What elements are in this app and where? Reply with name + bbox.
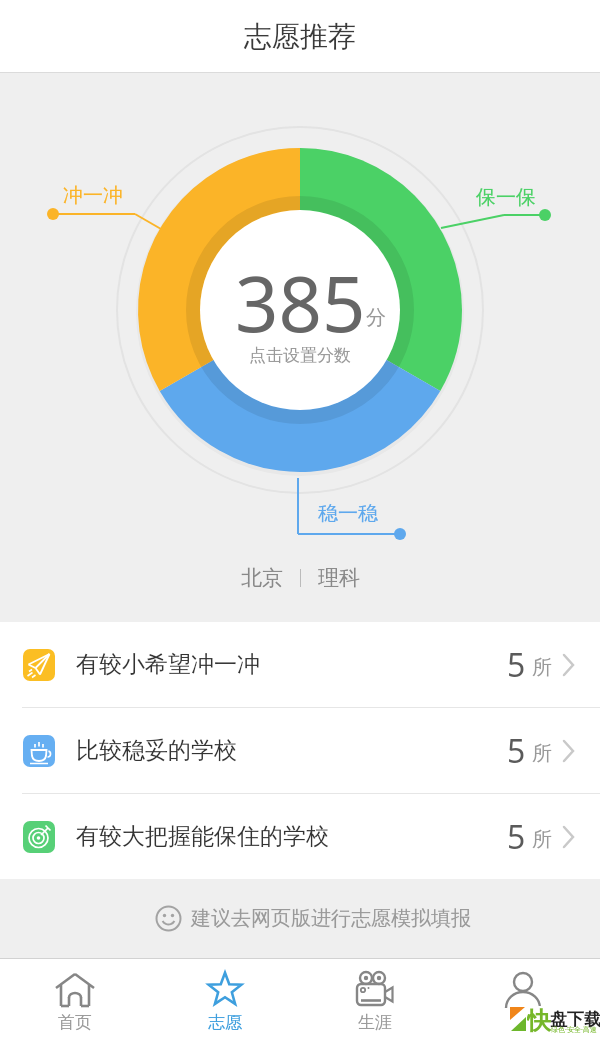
staticText: 稳一稳 <box>318 501 378 526</box>
staticText: 盘下载 <box>550 1009 600 1030</box>
staticText: 绿色·安全·高速 <box>551 1025 597 1035</box>
staticText: 志愿 <box>208 1012 242 1033</box>
staticText: 5 <box>507 729 526 773</box>
staticText: 5 <box>507 815 526 859</box>
staticText: 生涯 <box>358 1012 392 1033</box>
staticText: 理科 <box>318 565 360 591</box>
staticText: 点击设置分数 <box>249 345 351 366</box>
staticText: 比较稳妥的学校 <box>76 736 237 765</box>
staticText: 北京 <box>241 565 283 591</box>
staticText: 385 <box>235 251 366 355</box>
staticText: 所 <box>532 741 552 766</box>
staticText: 分 <box>366 305 386 330</box>
staticText: 冲一冲 <box>63 183 123 208</box>
button[interactable]: 有较大把握能保住的学校 <box>0 794 600 879</box>
button[interactable]: 比较稳妥的学校 <box>0 708 600 793</box>
staticText: 5 <box>507 643 526 687</box>
staticText: 首页 <box>58 1012 92 1033</box>
staticText: 志愿推荐 <box>244 19 356 54</box>
button[interactable]: 有较小希望冲一冲 <box>0 622 600 707</box>
button[interactable]: 北京 <box>241 565 360 591</box>
button[interactable]: 首页 <box>0 959 150 1039</box>
staticText: 建议去网页版进行志愿模拟填报 <box>191 906 471 931</box>
button[interactable]: 385 <box>235 251 366 355</box>
button[interactable] <box>450 959 600 1039</box>
button[interactable]: 志愿 <box>150 959 300 1039</box>
staticText: 所 <box>532 655 552 680</box>
button[interactable]: 生涯 <box>300 959 450 1039</box>
staticText: 所 <box>532 827 552 852</box>
staticText: 快 <box>527 1006 551 1034</box>
staticText: 有较大把握能保住的学校 <box>76 822 329 851</box>
staticText: 保一保 <box>476 185 536 210</box>
staticText: 有较小希望冲一冲 <box>76 650 260 679</box>
